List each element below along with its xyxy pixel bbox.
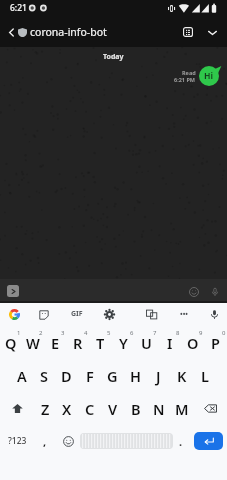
button[interactable]: Emoji (56, 425, 80, 457)
button[interactable]: GIF (68, 305, 86, 323)
staticText: N (153, 399, 165, 419)
button[interactable]: Voice message (207, 284, 222, 299)
button[interactable]: X (56, 392, 78, 425)
staticText: V (108, 399, 118, 419)
button[interactable]: C (78, 392, 101, 425)
button[interactable]: Period (173, 425, 189, 457)
button[interactable]: Z (34, 392, 56, 425)
staticText: A (17, 366, 27, 386)
button[interactable]: Show more (200, 20, 224, 44)
button[interactable]: Voice input (207, 307, 222, 322)
button[interactable]: A (11, 359, 33, 392)
button[interactable]: K (170, 359, 193, 392)
button[interactable]: N (147, 392, 170, 425)
button[interactable]: S (33, 359, 55, 392)
button[interactable]: Q (0, 327, 22, 359)
button[interactable]: T (89, 327, 112, 359)
staticText: G (107, 366, 118, 386)
button[interactable]: Translate (144, 307, 159, 322)
button[interactable]: Backspace (193, 392, 227, 425)
staticText: 8 (176, 329, 180, 337)
button[interactable]: F (78, 359, 101, 392)
button[interactable]: L (193, 359, 216, 392)
button[interactable]: Enter (194, 432, 223, 450)
staticText: W (26, 333, 40, 353)
button[interactable]: Google search (7, 307, 22, 322)
button[interactable]: Bot info (176, 20, 200, 44)
staticText: Read (182, 69, 196, 76)
staticText: Hi (204, 70, 214, 82)
staticText: O (187, 333, 199, 353)
staticText: 3 (61, 329, 65, 337)
staticText: 1 (17, 329, 21, 337)
staticText: Y (119, 333, 128, 353)
staticText: K (177, 366, 187, 386)
button[interactable]: Y (112, 327, 135, 359)
staticText: U (141, 333, 152, 353)
staticText: D (61, 366, 72, 386)
button[interactable]: ?123 (0, 425, 34, 457)
button[interactable]: I (158, 327, 181, 359)
button[interactable]: D (55, 359, 78, 392)
button[interactable]: B (124, 392, 147, 425)
button[interactable]: M (170, 392, 193, 425)
button[interactable]: Bot commands (7, 285, 19, 297)
button[interactable]: Stickers (36, 307, 51, 322)
button[interactable]: Space (80, 425, 173, 457)
staticText: ••• (180, 310, 188, 320)
button[interactable]: U (135, 327, 158, 359)
staticText: C (85, 399, 95, 419)
staticText: P (211, 333, 220, 353)
button[interactable]: V (101, 392, 124, 425)
staticText: 4 (84, 329, 88, 337)
staticText: 5 (107, 329, 111, 337)
staticText: 7 (153, 329, 157, 337)
button[interactable]: Settings (102, 307, 117, 322)
button[interactable]: G (101, 359, 124, 392)
staticText: F (86, 366, 94, 386)
staticText: 9 (199, 329, 203, 337)
button[interactable]: Emoji (186, 284, 201, 299)
button[interactable]: H (124, 359, 147, 392)
staticText: GIF (71, 309, 83, 319)
staticText: S (40, 366, 48, 386)
staticText: corona-info-bot (30, 25, 107, 39)
staticText: Q (5, 333, 17, 353)
staticText: , (43, 434, 47, 449)
button[interactable]: Shift (0, 392, 34, 425)
staticText: Z (41, 399, 50, 419)
button[interactable]: More options (176, 307, 191, 322)
button[interactable]: J (147, 359, 170, 392)
button[interactable]: P (204, 327, 227, 359)
staticText: X (62, 399, 72, 419)
button[interactable]: O (181, 327, 204, 359)
button[interactable]: E (44, 327, 66, 359)
staticText: J (156, 366, 161, 386)
staticText: R (73, 333, 83, 353)
staticText: 0 (222, 329, 226, 337)
button[interactable]: Comma (34, 425, 56, 457)
staticText: . (179, 434, 183, 449)
staticText: I (167, 333, 173, 353)
staticText: 6 (130, 329, 134, 337)
staticText: E (51, 333, 60, 353)
button[interactable]: Back (0, 21, 22, 43)
staticText: B (131, 399, 141, 419)
button[interactable]: R (66, 327, 89, 359)
button[interactable]: W (22, 327, 44, 359)
staticText: Today (103, 52, 124, 62)
staticText: ?123 (8, 435, 27, 447)
staticText: L (201, 366, 209, 386)
staticText: 6:21 (10, 2, 27, 14)
staticText: M (175, 399, 189, 419)
staticText: 2 (39, 329, 43, 337)
staticText: H (130, 366, 141, 386)
staticText: 6:21 PM (174, 76, 196, 83)
staticText: T (96, 333, 105, 353)
